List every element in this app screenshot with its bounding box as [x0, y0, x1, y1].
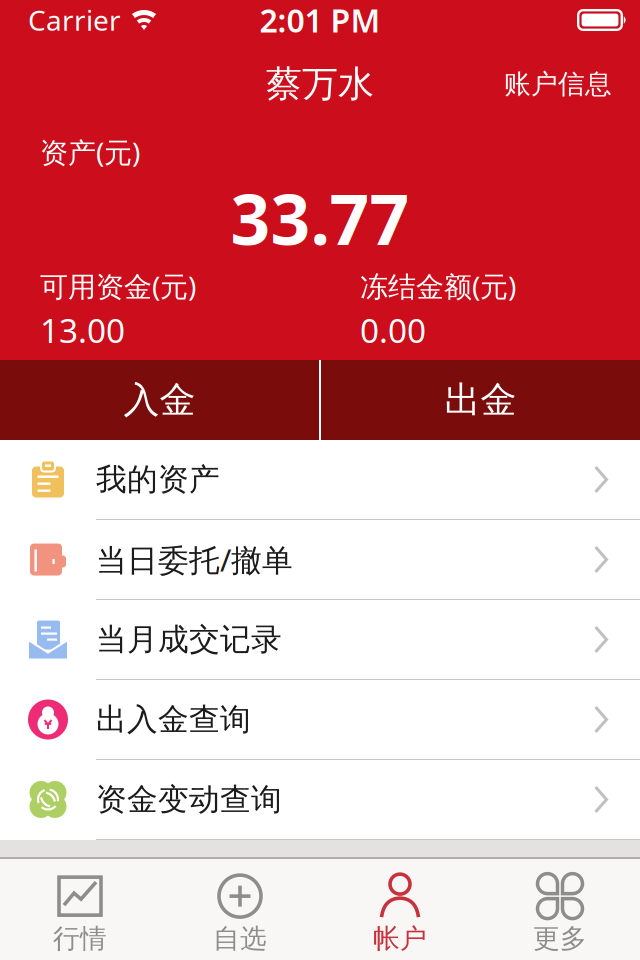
staticText: 我的资产	[96, 461, 220, 498]
button[interactable]: 自选	[160, 860, 320, 959]
staticText: 出入金查询	[96, 701, 251, 738]
staticText: 行情	[53, 922, 107, 955]
button[interactable]: 更多	[480, 860, 640, 959]
staticText: 帐户	[373, 922, 427, 955]
staticText: 账户信息	[504, 68, 612, 100]
button[interactable]: 出入金查询	[0, 680, 640, 760]
staticText: 出金	[444, 378, 516, 422]
staticText: 自选	[213, 922, 267, 955]
button[interactable]: 当日委托/撤单	[0, 520, 640, 600]
button[interactable]: 入金	[0, 360, 319, 440]
button[interactable]: 帐户	[320, 860, 480, 959]
staticText: Carrier	[28, 1, 121, 39]
button[interactable]: 行情	[0, 860, 160, 959]
button[interactable]: 资金变动查询	[0, 760, 640, 840]
staticText: 更多	[533, 922, 587, 955]
staticText: 入金	[123, 378, 195, 422]
staticText: 当月成交记录	[96, 621, 282, 658]
staticText: 资产(元)	[40, 133, 140, 171]
staticText: 可用资金(元)	[40, 267, 196, 305]
button[interactable]: 账户信息	[504, 68, 612, 100]
staticText: 2:01 PM	[259, 0, 380, 41]
button[interactable]: 我的资产	[0, 440, 640, 520]
button[interactable]: 当月成交记录	[0, 600, 640, 680]
button[interactable]: 出金	[321, 360, 640, 440]
staticText: 冻结金额(元)	[360, 267, 516, 305]
staticText: 资金变动查询	[96, 781, 282, 818]
staticText: 当日委托/撤单	[96, 539, 293, 580]
staticText: 蔡万水	[266, 62, 374, 106]
staticText: 33.77	[230, 172, 409, 264]
staticText: 0.00	[360, 308, 426, 352]
staticText: 13.00	[40, 308, 125, 352]
